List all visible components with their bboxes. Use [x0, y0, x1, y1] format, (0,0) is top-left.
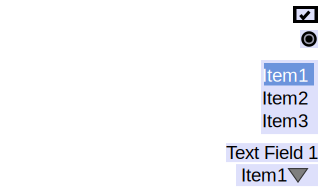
staticText: Item1: [262, 65, 308, 86]
staticText: Item3: [262, 110, 308, 131]
staticText: Item1: [241, 165, 287, 186]
button[interactable]: Radio Button 1: [300, 30, 318, 48]
staticText: Item2: [262, 88, 308, 108]
button[interactable]: Item1: [236, 164, 318, 186]
button[interactable]: Check Box 1: [293, 6, 318, 23]
staticText: Text Field 1: [226, 142, 318, 163]
